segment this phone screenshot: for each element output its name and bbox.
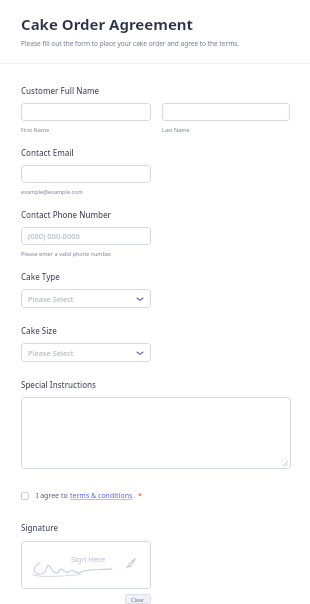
staticText: Special Instructions <box>21 379 96 390</box>
staticText: I agree to <box>36 491 70 501</box>
staticText: Please enter a valid phone number. <box>21 250 112 257</box>
button[interactable]: Contact Email input <box>21 165 151 183</box>
staticText: Clear <box>131 596 145 602</box>
staticText: Contact Email <box>21 147 74 158</box>
button[interactable]: Cake Size dropdown <box>21 343 151 362</box>
button[interactable]: Contact Phone Number input <box>21 227 151 245</box>
staticText: Last Name <box>162 126 190 133</box>
button[interactable]: Signature pad <box>21 541 151 589</box>
staticText: Cake Size <box>21 325 57 336</box>
staticText: Sign Here <box>71 554 106 564</box>
staticText: . <box>133 491 135 501</box>
staticText: Customer Full Name <box>21 85 100 96</box>
button[interactable]: Clear <box>125 594 151 604</box>
staticText: * <box>138 491 142 501</box>
button[interactable]: Special Instructions text area <box>21 397 291 469</box>
staticText: Contact Phone Number <box>21 209 111 220</box>
button[interactable]: I agree to <box>21 490 142 502</box>
staticText: Cake Type <box>21 271 60 282</box>
button[interactable]: Last Name input <box>162 103 290 121</box>
staticText: Signature <box>21 522 59 533</box>
staticText: Please Select <box>28 294 74 304</box>
staticText: First Name <box>21 126 50 133</box>
button[interactable]: Cake Type dropdown <box>21 289 151 308</box>
staticText: Please Select <box>28 348 74 358</box>
staticText: (000) 000-0000 <box>28 231 80 241</box>
staticText: Please fill out the form to place your c… <box>21 39 240 48</box>
button[interactable]: First Name input <box>21 103 151 121</box>
staticText: Cake Order Agreement <box>21 14 194 34</box>
staticText: example@example.com <box>21 188 83 195</box>
staticText: terms & conditions <box>70 491 133 501</box>
